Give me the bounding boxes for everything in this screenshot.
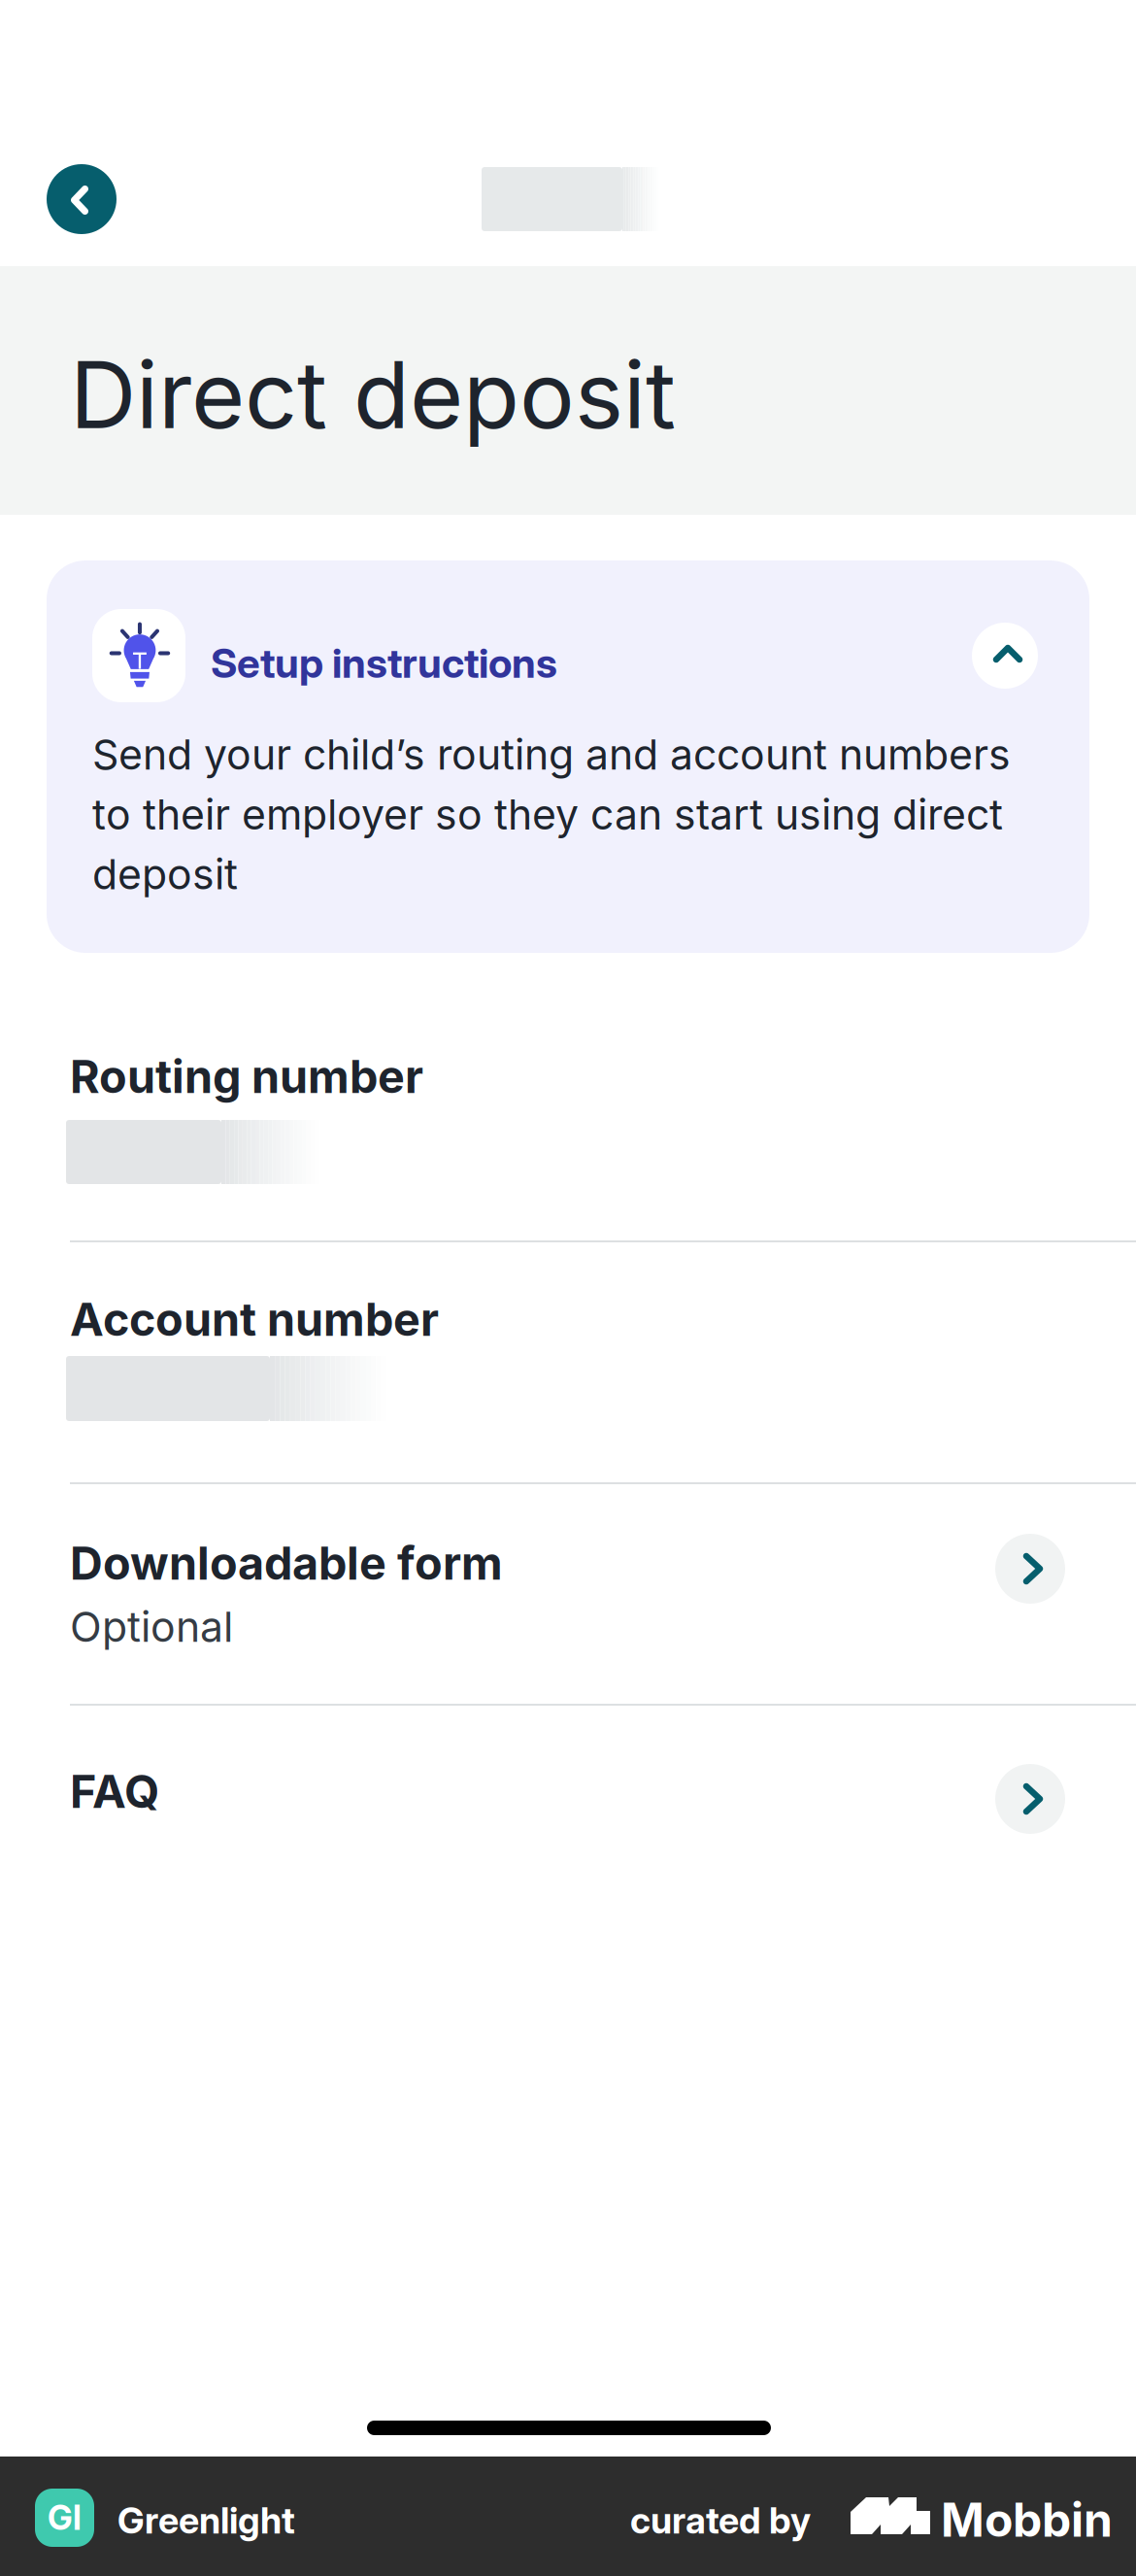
staticText: curated by bbox=[630, 2498, 811, 2542]
button[interactable]: Back bbox=[47, 164, 117, 234]
staticText: Account number bbox=[70, 1292, 439, 1347]
button[interactable]: Downloadable form bbox=[0, 1484, 1136, 1704]
staticText: Direct deposit bbox=[70, 339, 676, 450]
staticText: FAQ bbox=[70, 1764, 159, 1819]
staticText: Routing number bbox=[70, 1049, 423, 1104]
staticText: Setup instructions bbox=[211, 638, 557, 688]
staticText: Downloadable form bbox=[70, 1536, 503, 1591]
staticText: Send your child’s routing and account nu… bbox=[92, 729, 1011, 899]
button[interactable]: Collapse setup instructions bbox=[972, 623, 1038, 689]
staticText: Mobbin bbox=[941, 2491, 1113, 2548]
staticText: Greenlight bbox=[117, 2498, 295, 2542]
staticText: Optional bbox=[70, 1602, 233, 1652]
staticText: Gl bbox=[48, 2497, 82, 2538]
button[interactable]: FAQ bbox=[0, 1706, 1136, 1861]
